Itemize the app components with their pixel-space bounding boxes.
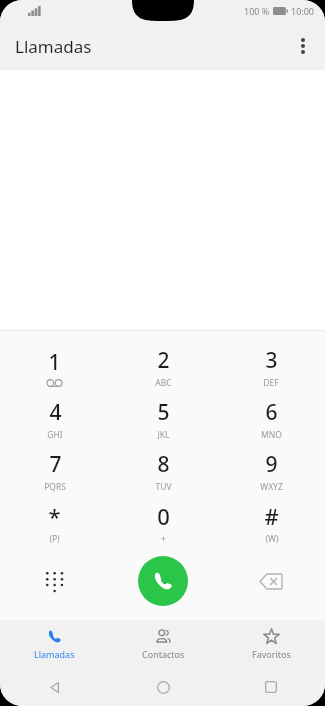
staticText: (W) [265,533,279,545]
button[interactable]: # [217,497,325,549]
staticText: 1 [48,348,61,377]
button[interactable]: Back [0,668,109,706]
button[interactable]: Keypad [0,552,109,610]
staticText: Contactos [142,648,185,660]
staticText: DEF [263,377,279,389]
staticText: 8 [157,450,170,479]
staticText: GHI [47,429,63,441]
button[interactable]: Favoritos [217,620,325,668]
staticText: # [264,501,279,531]
staticText: 2 [157,346,170,375]
button[interactable]: 0 [109,497,217,549]
staticText: TUV [155,481,172,493]
button[interactable]: 1 [0,341,109,393]
button[interactable]: More options [281,24,325,68]
staticText: 6 [265,398,278,427]
staticText: MNO [261,429,282,441]
button[interactable]: 2 [109,341,217,393]
staticText: Llamadas [34,648,75,660]
button[interactable]: Home [109,668,217,706]
staticText: 100 % [244,5,270,17]
button[interactable]: 5 [109,393,217,445]
staticText: 3 [265,346,278,375]
staticText: 0 [157,501,170,531]
staticText: 9 [265,450,278,479]
button[interactable]: * [0,497,109,549]
staticText: ABC [155,377,172,389]
staticText: 4 [49,398,62,427]
staticText: * [48,501,61,531]
button[interactable]: Backspace [217,552,325,610]
button[interactable]: 7 [0,445,109,497]
staticText: + [161,533,166,545]
staticText: 7 [49,450,62,479]
button[interactable]: 9 [217,445,325,497]
staticText: JKL [157,429,170,441]
staticText: (P) [49,533,60,545]
button[interactable]: 6 [217,393,325,445]
button[interactable]: Llamadas [0,620,109,668]
staticText: Llamadas [15,35,92,58]
button[interactable]: 3 [217,341,325,393]
button[interactable]: Recents [217,668,325,706]
button[interactable]: Call [138,556,188,606]
staticText: 5 [157,398,170,427]
staticText: 10:00 [291,5,315,17]
staticText: Favoritos [252,648,291,660]
button[interactable]: 4 [0,393,109,445]
staticText: WXYZ [260,481,283,493]
button[interactable]: Contactos [109,620,217,668]
staticText: PQRS [44,481,66,493]
button[interactable]: 8 [109,445,217,497]
